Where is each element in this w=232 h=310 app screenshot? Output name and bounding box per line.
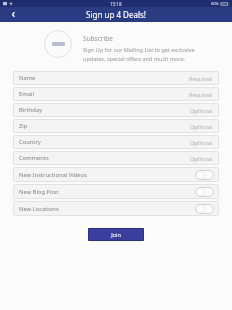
button[interactable]: New Locations	[13, 201, 219, 216]
staticText: Sign Up for our Mailing List to get excl…	[83, 46, 195, 53]
staticText: New Blog Post	[19, 188, 59, 196]
button[interactable]: Country	[13, 135, 219, 149]
staticText: Sign up 4 Deals!	[86, 9, 146, 20]
staticText: Comments	[19, 154, 49, 162]
button[interactable]: Name	[13, 71, 219, 85]
staticText: Subscribe	[83, 34, 113, 43]
button[interactable]: Birthday	[13, 103, 219, 117]
staticText: 15:18	[110, 1, 122, 7]
staticText: New Instructional Videos	[19, 171, 87, 179]
staticText: Birthday	[19, 106, 43, 114]
staticText: Zip	[19, 122, 28, 130]
staticText: Name	[19, 74, 36, 82]
button[interactable]: New Instructional Videos	[13, 167, 219, 182]
staticText: Email	[19, 90, 34, 98]
staticText: Optional	[190, 123, 213, 130]
button[interactable]: Join	[88, 228, 144, 241]
button[interactable]: Comments	[13, 151, 219, 165]
button[interactable]: Email	[13, 87, 219, 101]
staticText: updates, special offers and much more.	[83, 55, 186, 62]
staticText: Required	[189, 91, 213, 98]
button[interactable]: Zip	[13, 119, 219, 133]
button[interactable]: Back	[0, 7, 26, 22]
button[interactable]: Toggle notification	[195, 187, 214, 197]
staticText: Optional	[190, 155, 213, 162]
staticText: New Locations	[19, 205, 59, 213]
staticText: Country	[19, 138, 41, 146]
button[interactable]: Toggle notification	[195, 170, 214, 180]
staticText: Required	[189, 75, 213, 82]
button[interactable]: Toggle notification	[195, 204, 214, 214]
staticText: 60%	[211, 1, 219, 6]
staticText: Optional	[190, 107, 213, 114]
staticText: Join	[111, 231, 121, 238]
button[interactable]: New Blog Post	[13, 184, 219, 199]
staticText: Optional	[190, 139, 213, 146]
